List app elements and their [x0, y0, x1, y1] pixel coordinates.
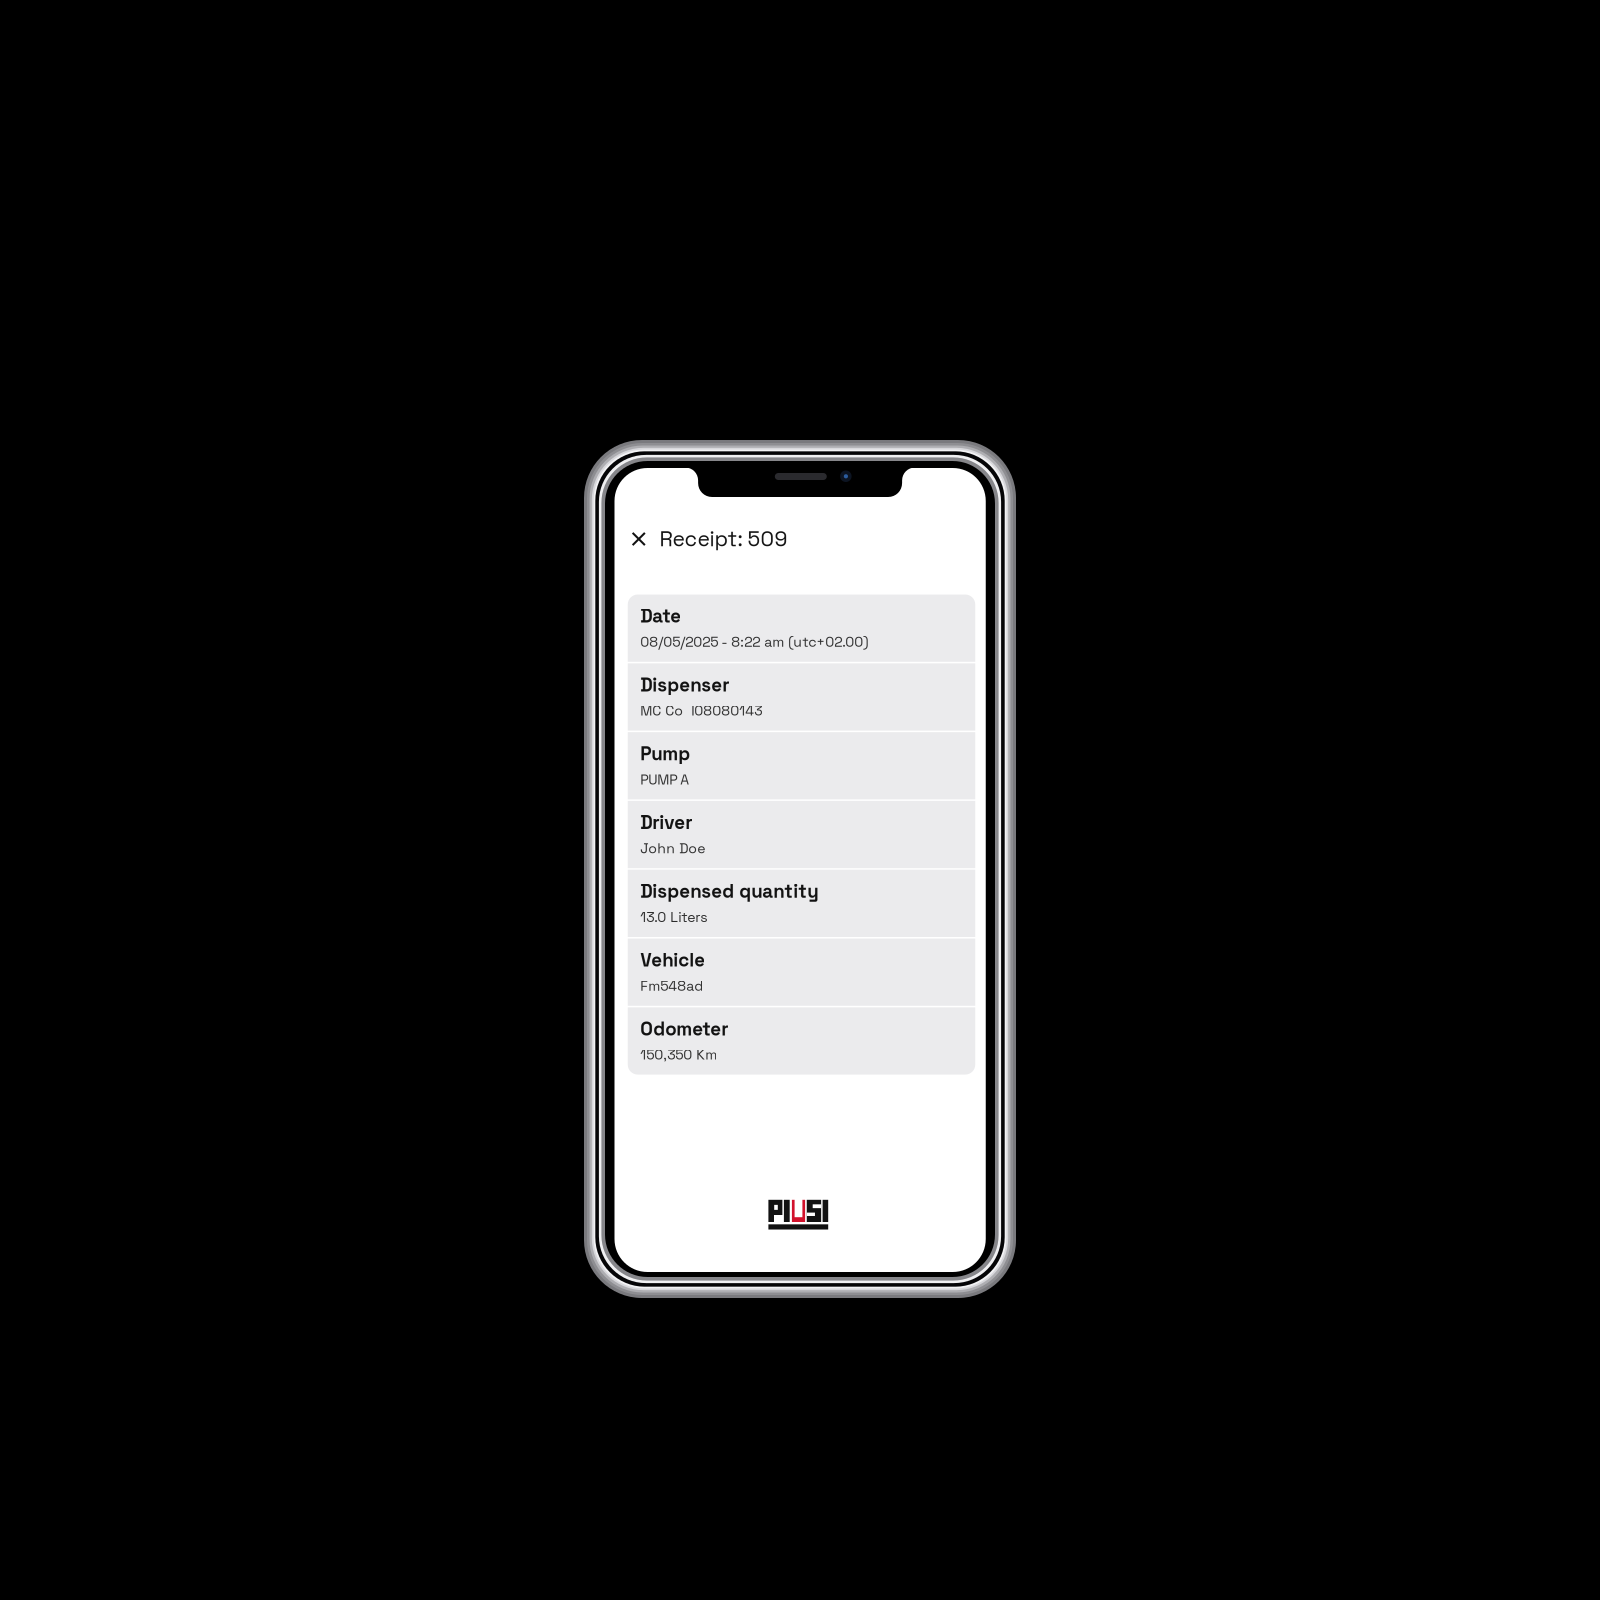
staticText: MC Co I08080143: [640, 702, 762, 720]
staticText: John Doe: [640, 839, 705, 857]
button[interactable]: Receipt: 509: [614, 517, 986, 561]
staticText: Odometer: [640, 1017, 728, 1041]
staticText: Vehicle: [640, 948, 705, 972]
staticText: Pump: [640, 742, 690, 766]
staticText: 150,350 Km: [640, 1046, 717, 1064]
staticText: PUMP A: [640, 771, 689, 788]
staticText: 13.0 Liters: [640, 908, 707, 926]
staticText: Receipt: 509: [659, 526, 787, 552]
staticText: Date: [640, 604, 681, 628]
staticText: Dispensed quantity: [640, 879, 818, 903]
staticText: 08/05/2025 - 8:22 am (utc+02.00): [640, 633, 868, 651]
staticText: Fm548ad: [640, 977, 703, 995]
staticText: Driver: [640, 811, 692, 834]
staticText: Dispenser: [640, 673, 729, 697]
